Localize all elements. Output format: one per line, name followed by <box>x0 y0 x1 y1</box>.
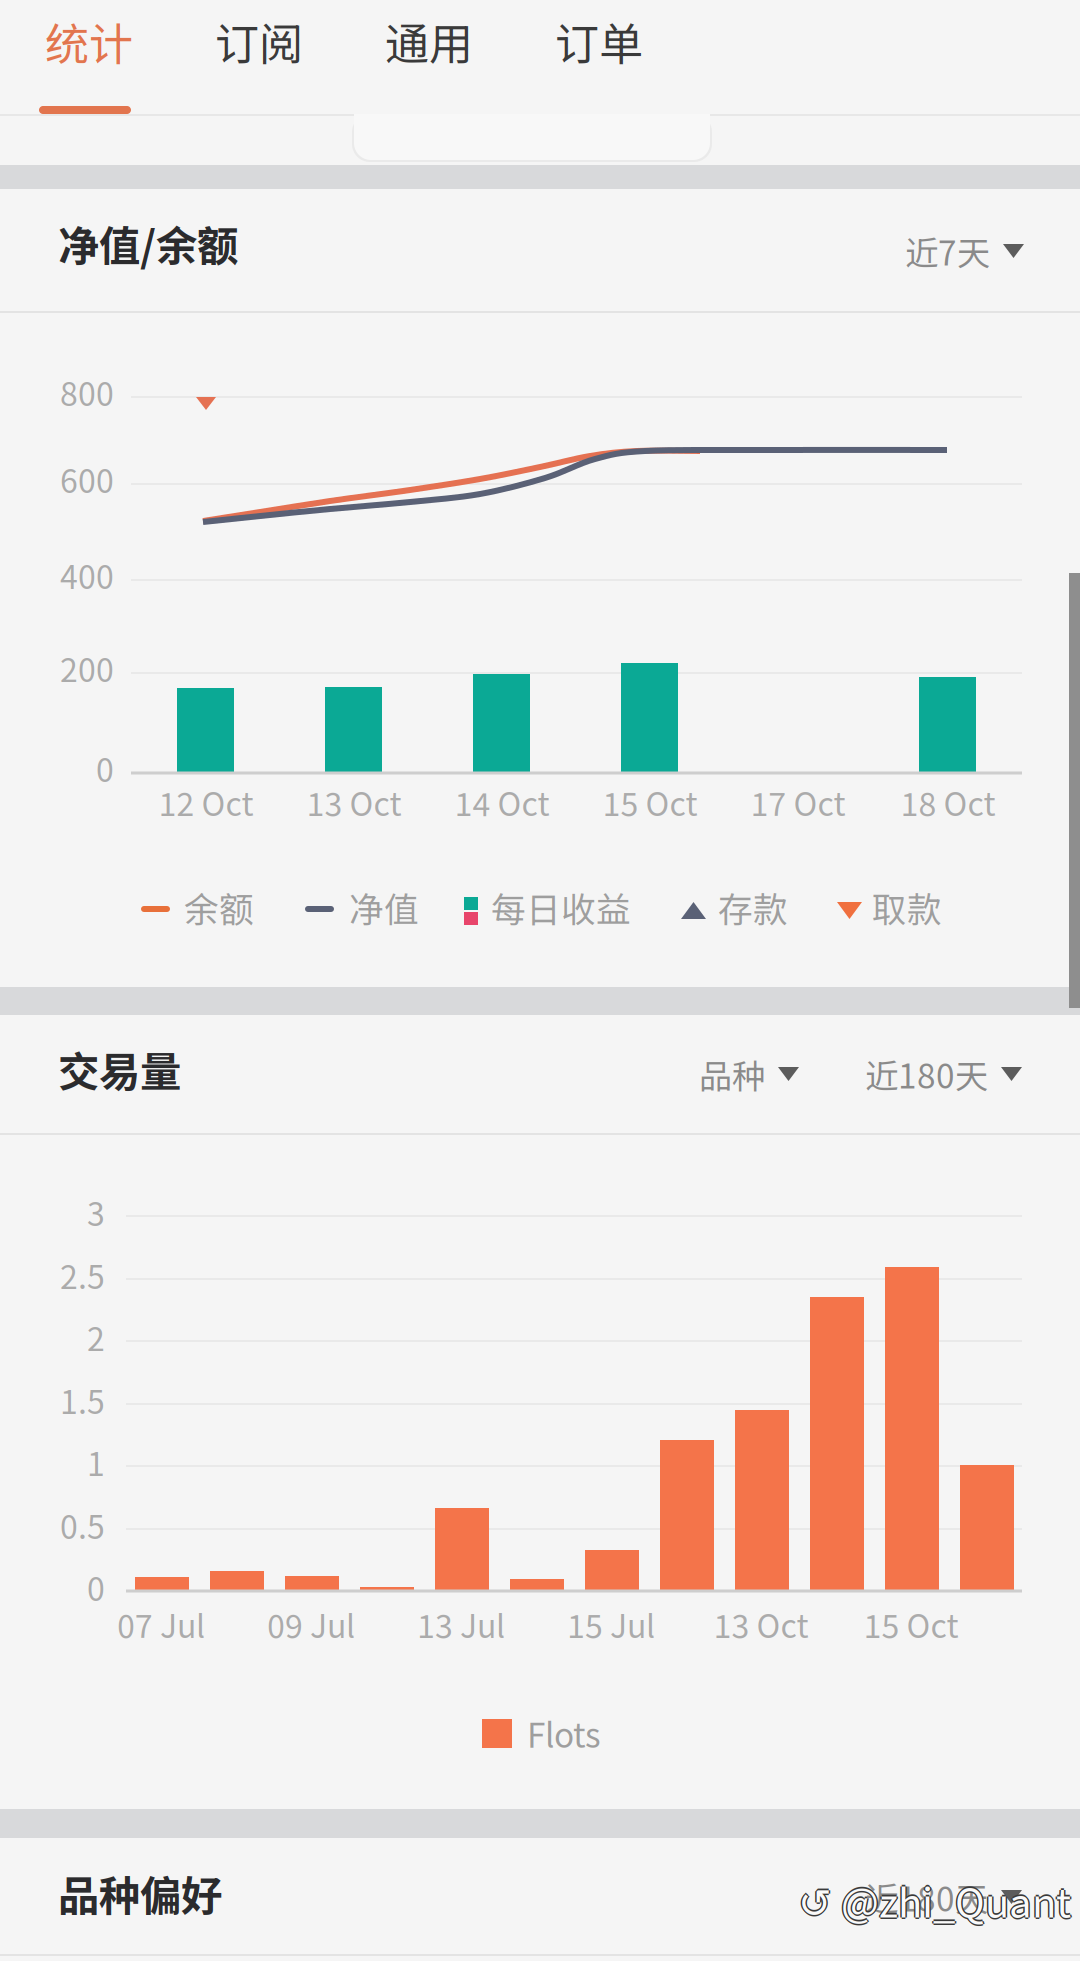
staticText: 净值 <box>349 882 419 932</box>
staticText: 统计 <box>45 9 133 73</box>
staticText: 2.5 <box>60 1252 105 1298</box>
staticText: 17 Oct <box>750 779 845 825</box>
staticText: 近180天 <box>865 1050 988 1098</box>
staticText: 15 Oct <box>602 779 697 825</box>
staticText: ↺ @zhi_Quant <box>796 1871 1069 1929</box>
button[interactable]: 统计 <box>4 0 174 114</box>
staticText: 800 <box>60 369 114 415</box>
staticText: 200 <box>60 645 114 691</box>
staticText: 0 <box>96 745 114 791</box>
staticText: ↺ @zhi_Quant <box>800 1871 1073 1929</box>
staticText: 近7天 <box>905 227 990 275</box>
staticText: 每日收益 <box>491 882 631 932</box>
staticText: 07 Jul <box>117 1601 205 1647</box>
staticText: 3 <box>87 1189 105 1235</box>
staticText: 余额 <box>184 882 254 932</box>
staticText: 0 <box>87 1564 105 1610</box>
button[interactable]: 品种 <box>695 1031 803 1117</box>
staticText: 09 Jul <box>267 1601 355 1647</box>
staticText: 18 Oct <box>900 779 995 825</box>
button[interactable]: 近180天 <box>861 1854 1026 1940</box>
staticText: 交易量 <box>58 1039 181 1099</box>
staticText: 13 Jul <box>417 1601 505 1647</box>
staticText: 0.5 <box>60 1502 105 1548</box>
button[interactable]: 近7天 <box>901 208 1028 294</box>
staticText: 15 Oct <box>863 1601 958 1647</box>
staticText: 14 Oct <box>454 779 549 825</box>
staticText: 1 <box>87 1439 105 1485</box>
button[interactable]: 订单 <box>514 0 684 114</box>
staticText: 600 <box>60 456 114 502</box>
staticText: 2 <box>87 1314 105 1360</box>
staticText: ↺ @zhi_Quant <box>798 1869 1071 1927</box>
staticText: 400 <box>60 552 114 598</box>
staticText: 品种偏好 <box>58 1863 222 1923</box>
staticText: 订阅 <box>215 9 303 73</box>
staticText: ↺ @zhi_Quant <box>798 1871 1071 1929</box>
staticText: 1.5 <box>60 1377 105 1423</box>
staticText: 通用 <box>385 9 473 73</box>
staticText: 净值/余额 <box>58 213 238 273</box>
staticText: 15 Jul <box>567 1601 655 1647</box>
staticText: 取款 <box>872 882 942 932</box>
staticText: 近180天 <box>865 1873 988 1921</box>
staticText: 订单 <box>555 9 643 73</box>
button[interactable]: 近180天 <box>861 1031 1026 1117</box>
staticText: Flots <box>527 1709 601 1757</box>
staticText: 品种 <box>699 1050 765 1098</box>
staticText: 存款 <box>718 882 788 932</box>
staticText: 12 Oct <box>158 779 253 825</box>
staticText: ↺ @zhi_Quant <box>798 1873 1071 1930</box>
button[interactable]: 订阅 <box>174 0 344 114</box>
staticText: 13 Oct <box>306 779 401 825</box>
button[interactable]: 通用 <box>344 0 514 114</box>
staticText: 13 Oct <box>713 1601 808 1647</box>
